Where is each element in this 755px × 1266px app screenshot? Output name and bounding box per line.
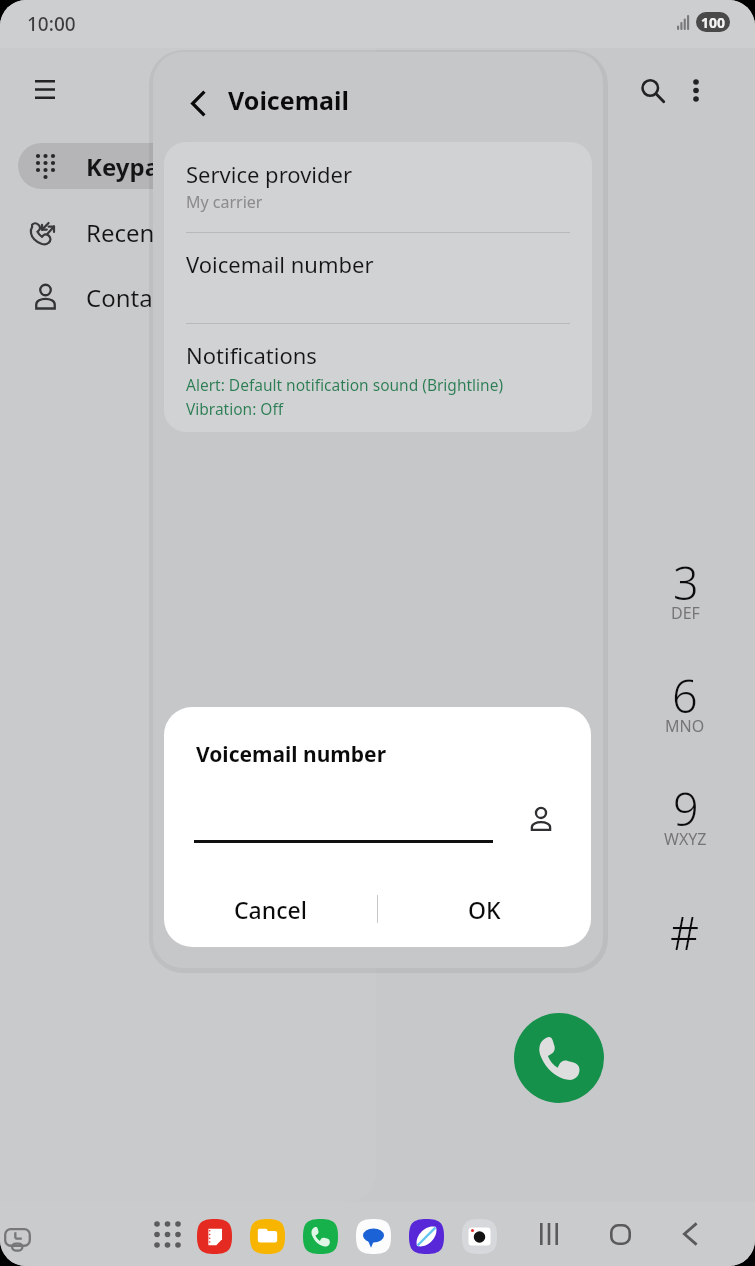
button[interactable]: Notifications xyxy=(164,324,592,419)
staticText: Notifications xyxy=(186,340,317,370)
staticText: Cancel xyxy=(234,894,307,925)
button[interactable]: My Files xyxy=(250,1219,285,1254)
staticText: OK xyxy=(468,894,501,925)
staticText: 6 xyxy=(672,665,698,726)
staticText: Service provider xyxy=(186,159,353,189)
staticText: 100 xyxy=(701,13,726,32)
button[interactable]: Messages xyxy=(356,1219,391,1254)
button[interactable]: Back xyxy=(174,79,222,127)
button[interactable]: DeX mode xyxy=(0,1222,34,1256)
button[interactable]: Recents xyxy=(18,209,360,255)
staticText: DEF xyxy=(671,602,700,624)
staticText: WXYZ xyxy=(664,828,707,850)
button[interactable]: Call xyxy=(514,1013,604,1103)
staticText: Voicemail number xyxy=(196,740,387,769)
button[interactable]: # xyxy=(622,874,748,987)
button[interactable]: Apps xyxy=(145,1212,189,1256)
staticText: Contacts xyxy=(86,281,185,314)
staticText: Vibration: Off xyxy=(186,398,284,419)
button[interactable]: Choose contact xyxy=(523,802,559,838)
staticText: MNO xyxy=(665,715,705,737)
button[interactable]: Search xyxy=(628,66,676,114)
staticText: 10:00 xyxy=(27,11,76,37)
button[interactable]: Service provider xyxy=(164,142,592,232)
staticText: Voicemail xyxy=(228,83,349,117)
button[interactable]: Back xyxy=(662,1202,718,1266)
button[interactable]: Cancel xyxy=(164,878,377,940)
staticText: 9 xyxy=(673,778,699,839)
button[interactable]: 6 xyxy=(622,648,748,761)
staticText: # xyxy=(670,902,700,963)
button[interactable]: Home xyxy=(592,1202,648,1266)
button[interactable]: More options xyxy=(672,66,720,114)
staticText: 3 xyxy=(673,552,699,613)
staticText: Recents xyxy=(86,216,175,249)
button[interactable]: Keypad xyxy=(18,143,360,189)
button[interactable]: Internet xyxy=(409,1219,444,1254)
button[interactable]: Recent apps xyxy=(521,1202,577,1266)
staticText: Alert: Default notification sound (Brigh… xyxy=(186,374,504,395)
button[interactable]: 9 xyxy=(622,761,748,874)
button[interactable]: Voicemail number xyxy=(164,233,592,323)
staticText: Keypad xyxy=(86,150,175,183)
staticText: My carrier xyxy=(186,191,263,213)
button[interactable]: OK xyxy=(378,878,591,940)
button[interactable]: Samsung Notes xyxy=(197,1219,232,1254)
button[interactable]: Phone xyxy=(303,1219,338,1254)
button[interactable]: Camera xyxy=(462,1219,497,1254)
button[interactable]: Menu xyxy=(21,65,69,113)
button[interactable]: Contacts xyxy=(18,274,360,320)
staticText: Voicemail number xyxy=(186,249,374,279)
button[interactable]: 3 xyxy=(622,535,748,648)
